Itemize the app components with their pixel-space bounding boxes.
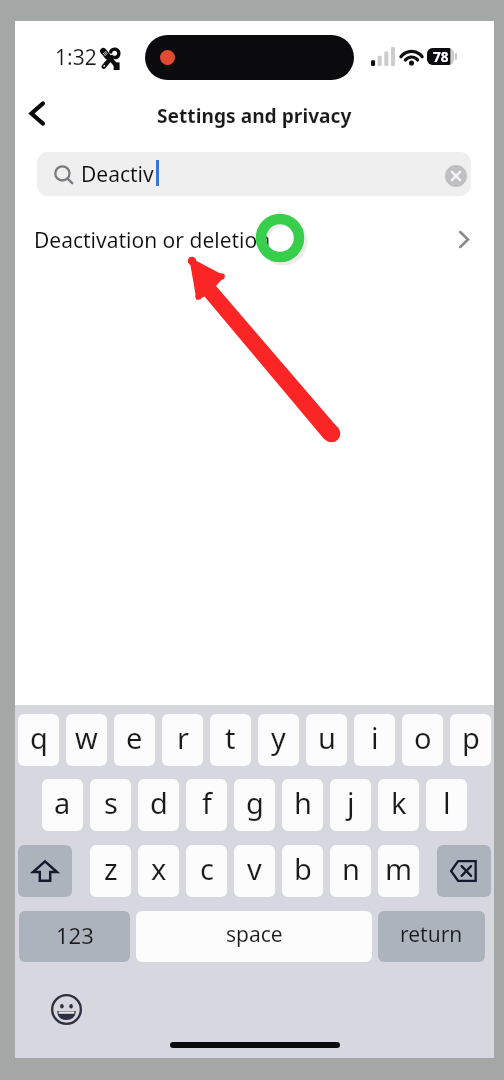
staticText: f [202, 783, 212, 822]
button[interactable]: Emoji keyboard [48, 991, 84, 1027]
staticText: d [150, 783, 168, 822]
button[interactable]: r [162, 714, 203, 766]
button[interactable]: t [210, 714, 251, 766]
button[interactable]: w [66, 714, 107, 766]
button[interactable]: e [114, 714, 155, 766]
staticText: 1:32 [55, 43, 97, 72]
staticText: u [318, 718, 336, 757]
button[interactable]: Backspace [437, 845, 491, 897]
staticText: o [414, 718, 432, 757]
staticText: m [385, 849, 413, 888]
button[interactable]: Shift [18, 845, 72, 897]
staticText: g [246, 783, 264, 822]
staticText: space [226, 920, 283, 949]
button[interactable]: Deactivation or deletion [15, 207, 494, 270]
button[interactable]: d [138, 779, 179, 831]
staticText: e [126, 718, 143, 757]
staticText: c [200, 849, 214, 888]
staticText: s [104, 783, 118, 822]
staticText: Deactivation or deletion [34, 226, 271, 255]
staticText: x [151, 849, 167, 888]
staticText: v [247, 849, 262, 888]
button[interactable]: return [378, 911, 485, 962]
button[interactable]: h [282, 779, 323, 831]
button[interactable]: x [138, 845, 179, 897]
staticText: h [294, 783, 312, 822]
button[interactable]: Back [15, 85, 63, 142]
button[interactable]: b [282, 845, 323, 897]
button[interactable]: k [378, 779, 419, 831]
staticText: r [177, 718, 189, 757]
staticText: q [30, 718, 48, 757]
staticText: Settings and privacy [157, 102, 352, 128]
button[interactable]: q [18, 714, 59, 766]
staticText: b [294, 849, 312, 888]
staticText: p [462, 718, 480, 757]
staticText: w [75, 718, 98, 757]
button[interactable]: o [402, 714, 443, 766]
button[interactable]: space [136, 911, 372, 962]
staticText: 78 [433, 48, 449, 66]
staticText: z [104, 849, 118, 888]
button[interactable]: a [42, 779, 83, 831]
staticText: l [443, 783, 451, 822]
button[interactable]: u [306, 714, 347, 766]
staticText: 123 [56, 920, 94, 950]
button[interactable]: i [354, 714, 395, 766]
button[interactable]: Clear search [443, 163, 469, 189]
button[interactable]: l [426, 779, 467, 831]
button[interactable]: f [186, 779, 227, 831]
button[interactable]: z [90, 845, 131, 897]
button[interactable]: 123 [19, 911, 130, 962]
button[interactable]: m [378, 845, 419, 897]
staticText: n [342, 849, 360, 888]
button[interactable]: Deactiv [37, 152, 471, 196]
button[interactable]: p [450, 714, 491, 766]
staticText: a [54, 783, 71, 822]
button[interactable]: c [186, 845, 227, 897]
button[interactable]: n [330, 845, 371, 897]
button[interactable]: v [234, 845, 275, 897]
button[interactable]: g [234, 779, 275, 831]
staticText: Deactiv [81, 160, 154, 189]
staticText: return [400, 920, 463, 949]
button[interactable]: j [330, 779, 371, 831]
staticText: t [225, 718, 236, 757]
staticText: i [371, 718, 379, 757]
button[interactable]: s [90, 779, 131, 831]
staticText: j [347, 783, 355, 822]
button[interactable]: y [258, 714, 299, 766]
staticText: k [391, 783, 407, 822]
staticText: y [271, 718, 286, 757]
